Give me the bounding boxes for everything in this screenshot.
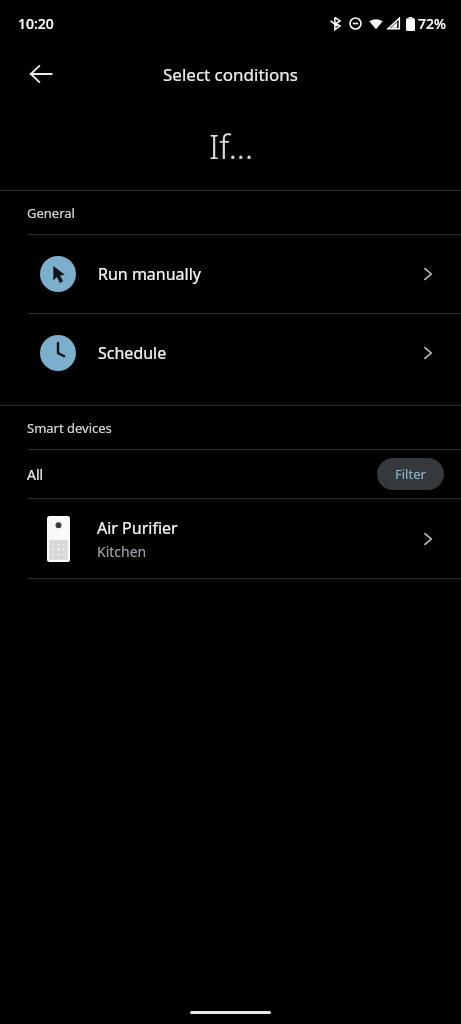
staticText: Select conditions — [163, 63, 298, 86]
staticText: Schedule — [98, 342, 167, 364]
staticText: 72% — [418, 14, 446, 33]
button[interactable]: Run manually — [0, 235, 461, 313]
staticText: All — [27, 465, 44, 484]
staticText: If... — [209, 124, 253, 169]
button[interactable]: Air Purifier — [0, 499, 461, 578]
button[interactable]: Schedule — [0, 314, 461, 392]
staticText: Air Purifier — [97, 517, 178, 539]
button[interactable]: Back — [19, 52, 63, 96]
staticText: General — [27, 204, 75, 222]
staticText: Filter — [395, 465, 426, 483]
staticText: Kitchen — [97, 542, 147, 561]
staticText: Run manually — [98, 263, 201, 285]
button[interactable]: Filter — [377, 458, 444, 490]
staticText: 10:20 — [18, 14, 54, 33]
staticText: Smart devices — [27, 419, 112, 437]
